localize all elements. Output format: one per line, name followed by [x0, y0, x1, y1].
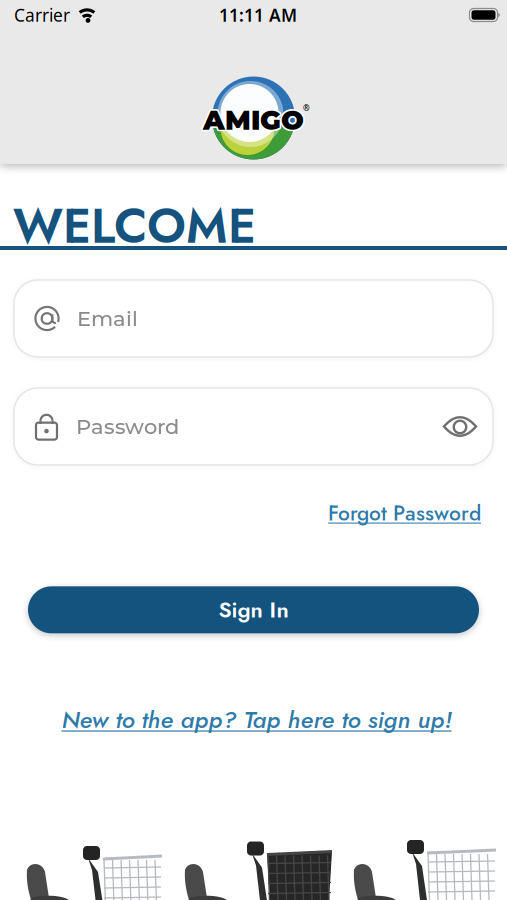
staticText: AMIGO — [203, 103, 304, 136]
staticText: AMIGO — [202, 105, 303, 138]
button[interactable]: Forgot Password — [328, 498, 481, 528]
staticText: Sign In — [218, 594, 288, 626]
staticText: ® — [303, 103, 310, 113]
button[interactable]: Password — [14, 388, 493, 465]
staticText: AMIGO — [201, 103, 302, 136]
staticText: AMIGO — [204, 105, 305, 138]
button[interactable]: Show password — [439, 412, 481, 441]
staticText: Email — [77, 306, 138, 331]
staticText: AMIGO — [202, 102, 303, 135]
staticText: Forgot Password — [328, 498, 481, 528]
button[interactable]: Sign In — [28, 586, 479, 633]
staticText: WELCOME — [13, 191, 256, 261]
staticText: Password — [76, 414, 179, 439]
staticText: AMIGO — [205, 103, 306, 136]
staticText: Carrier — [14, 3, 70, 26]
staticText: AMIGO — [203, 102, 304, 135]
staticText: AMIGO — [203, 105, 304, 138]
staticText: 11:11 AM — [219, 3, 297, 26]
button[interactable]: New to the app? Tap here to sign up! — [61, 702, 451, 737]
staticText: New to the app? Tap here to sign up! — [61, 702, 451, 737]
staticText: AMIGO — [204, 102, 305, 135]
button[interactable]: Email — [14, 280, 493, 357]
